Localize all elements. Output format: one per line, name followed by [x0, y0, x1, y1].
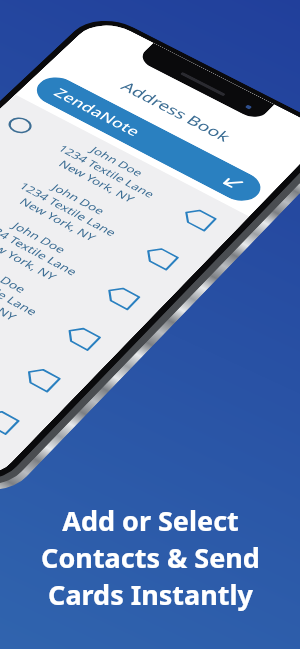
staticText: John Doe	[87, 144, 146, 179]
other: Send card	[139, 242, 181, 272]
staticText: 1234 Textile Lane	[0, 217, 82, 278]
other: Send card	[100, 282, 142, 312]
staticText: John Doe	[9, 219, 69, 256]
staticText: New York, NY	[0, 233, 60, 283]
button[interactable]: ZendaNote	[29, 72, 268, 207]
other: Collapse	[218, 172, 248, 193]
other: Send card	[0, 405, 21, 437]
staticText: Address Book	[117, 78, 235, 145]
staticText: New York, NY	[56, 157, 138, 205]
staticText: 1234 Textile Lane	[0, 296, 1, 359]
staticText: John Doe	[49, 181, 108, 217]
staticText: John Doe	[0, 258, 30, 296]
button[interactable]: Select contact	[0, 94, 249, 255]
staticText: 1234 Textile Lane	[16, 179, 121, 239]
staticText: New York, NY	[0, 273, 20, 323]
button[interactable]: Select contact	[0, 285, 54, 461]
staticText: Contacts & Send	[41, 539, 260, 576]
staticText: Cards Instantly	[48, 576, 253, 613]
staticText: Add or Select	[62, 502, 239, 539]
button[interactable]: Select contact	[0, 168, 174, 335]
button[interactable]: Select contact	[0, 326, 13, 486]
other: Send card	[178, 204, 218, 233]
button[interactable]: Select contact	[0, 206, 135, 376]
staticText: New York, NY	[16, 195, 99, 244]
staticText: ZendaNote	[49, 84, 145, 140]
button[interactable]: Select contact	[0, 131, 212, 295]
other: Select contact	[4, 114, 36, 137]
other: Send card	[20, 363, 63, 394]
other: Send card	[60, 322, 103, 353]
staticText: 1234 Textile Lane	[55, 142, 159, 201]
button[interactable]: Select contact	[0, 245, 95, 418]
staticText: 1234 Textile Lane	[0, 256, 42, 319]
